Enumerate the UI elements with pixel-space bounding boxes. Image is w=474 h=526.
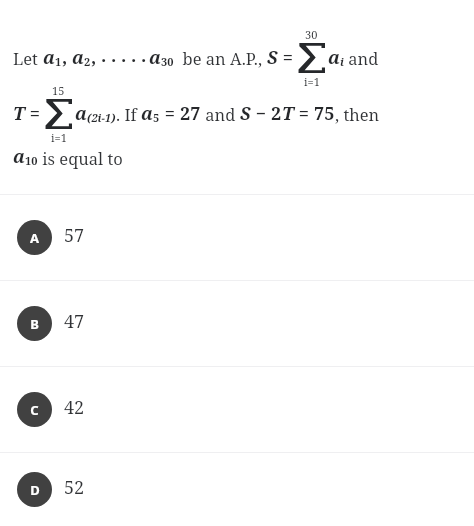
staticText: 5 — [153, 110, 160, 125]
staticText: and — [344, 47, 379, 69]
staticText: 30 — [305, 27, 318, 42]
staticText: 15 — [52, 83, 65, 98]
staticText: a — [43, 45, 55, 70]
staticText: i — [340, 54, 344, 69]
staticText: S — [240, 101, 251, 126]
staticText: Let — [13, 47, 43, 69]
staticText: 27 — [180, 101, 201, 126]
staticText: 42 — [64, 395, 85, 420]
staticText: 10 — [25, 153, 38, 168]
staticText: a — [13, 144, 25, 169]
staticText: . . . . . — [101, 43, 147, 68]
staticText: 30 — [161, 54, 174, 69]
staticText: be an A.P., — [174, 47, 267, 69]
staticText: = — [278, 45, 298, 70]
staticText: T — [13, 101, 25, 126]
staticText: A — [30, 229, 39, 247]
button[interactable]: C — [0, 367, 474, 452]
staticText: i=1 — [304, 74, 320, 89]
staticText: D — [30, 481, 40, 499]
staticText: 1 — [55, 54, 62, 69]
staticText: is equal to — [38, 147, 123, 169]
staticText: 47 — [64, 309, 85, 334]
staticText: 75 — [314, 101, 335, 126]
staticText: a — [149, 45, 161, 70]
staticText: i=1 — [51, 130, 67, 145]
staticText: 2 — [84, 54, 91, 69]
staticText: S — [267, 45, 278, 70]
staticText: a — [141, 101, 153, 126]
staticText: and — [201, 103, 240, 125]
staticText: = — [25, 101, 45, 126]
staticText: , — [91, 45, 101, 70]
staticText: a — [72, 45, 84, 70]
staticText: 57 — [64, 223, 85, 248]
staticText: = — [294, 101, 314, 126]
staticText: a — [75, 101, 87, 126]
button[interactable]: D — [0, 453, 474, 526]
staticText: , — [62, 45, 72, 70]
button[interactable]: B — [0, 281, 474, 366]
button[interactable]: A — [0, 195, 474, 280]
staticText: B — [30, 315, 39, 333]
staticText: 52 — [64, 475, 85, 500]
staticText: . If — [116, 103, 141, 125]
staticText: , then — [335, 103, 380, 125]
staticText: − — [251, 101, 271, 126]
staticText: 2 — [271, 101, 282, 126]
staticText: T — [282, 101, 294, 126]
staticText: (2i−1) — [87, 110, 116, 125]
staticText: C — [30, 401, 39, 419]
staticText: = — [160, 101, 180, 126]
staticText: a — [328, 45, 340, 70]
